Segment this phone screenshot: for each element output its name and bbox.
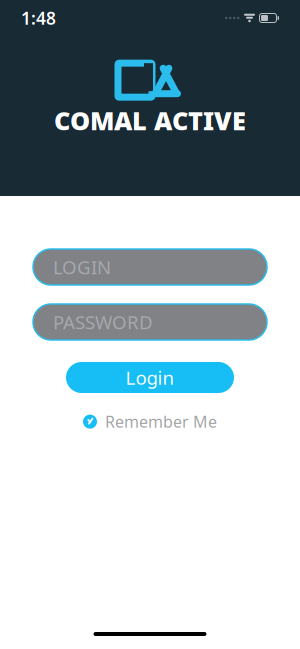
button[interactable]: LOGIN — [33, 249, 267, 285]
staticText: LOGIN — [53, 255, 111, 279]
button[interactable]: Remember Me — [83, 411, 217, 432]
button[interactable]: PASSWORD — [33, 304, 267, 340]
staticText: Remember Me — [105, 411, 217, 432]
staticText: 1:48 — [21, 6, 56, 29]
staticText: Login — [125, 365, 174, 390]
staticText: PASSWORD — [53, 310, 153, 334]
button[interactable]: Login — [66, 362, 234, 393]
staticText: COMAL ACTIVE — [54, 104, 246, 137]
